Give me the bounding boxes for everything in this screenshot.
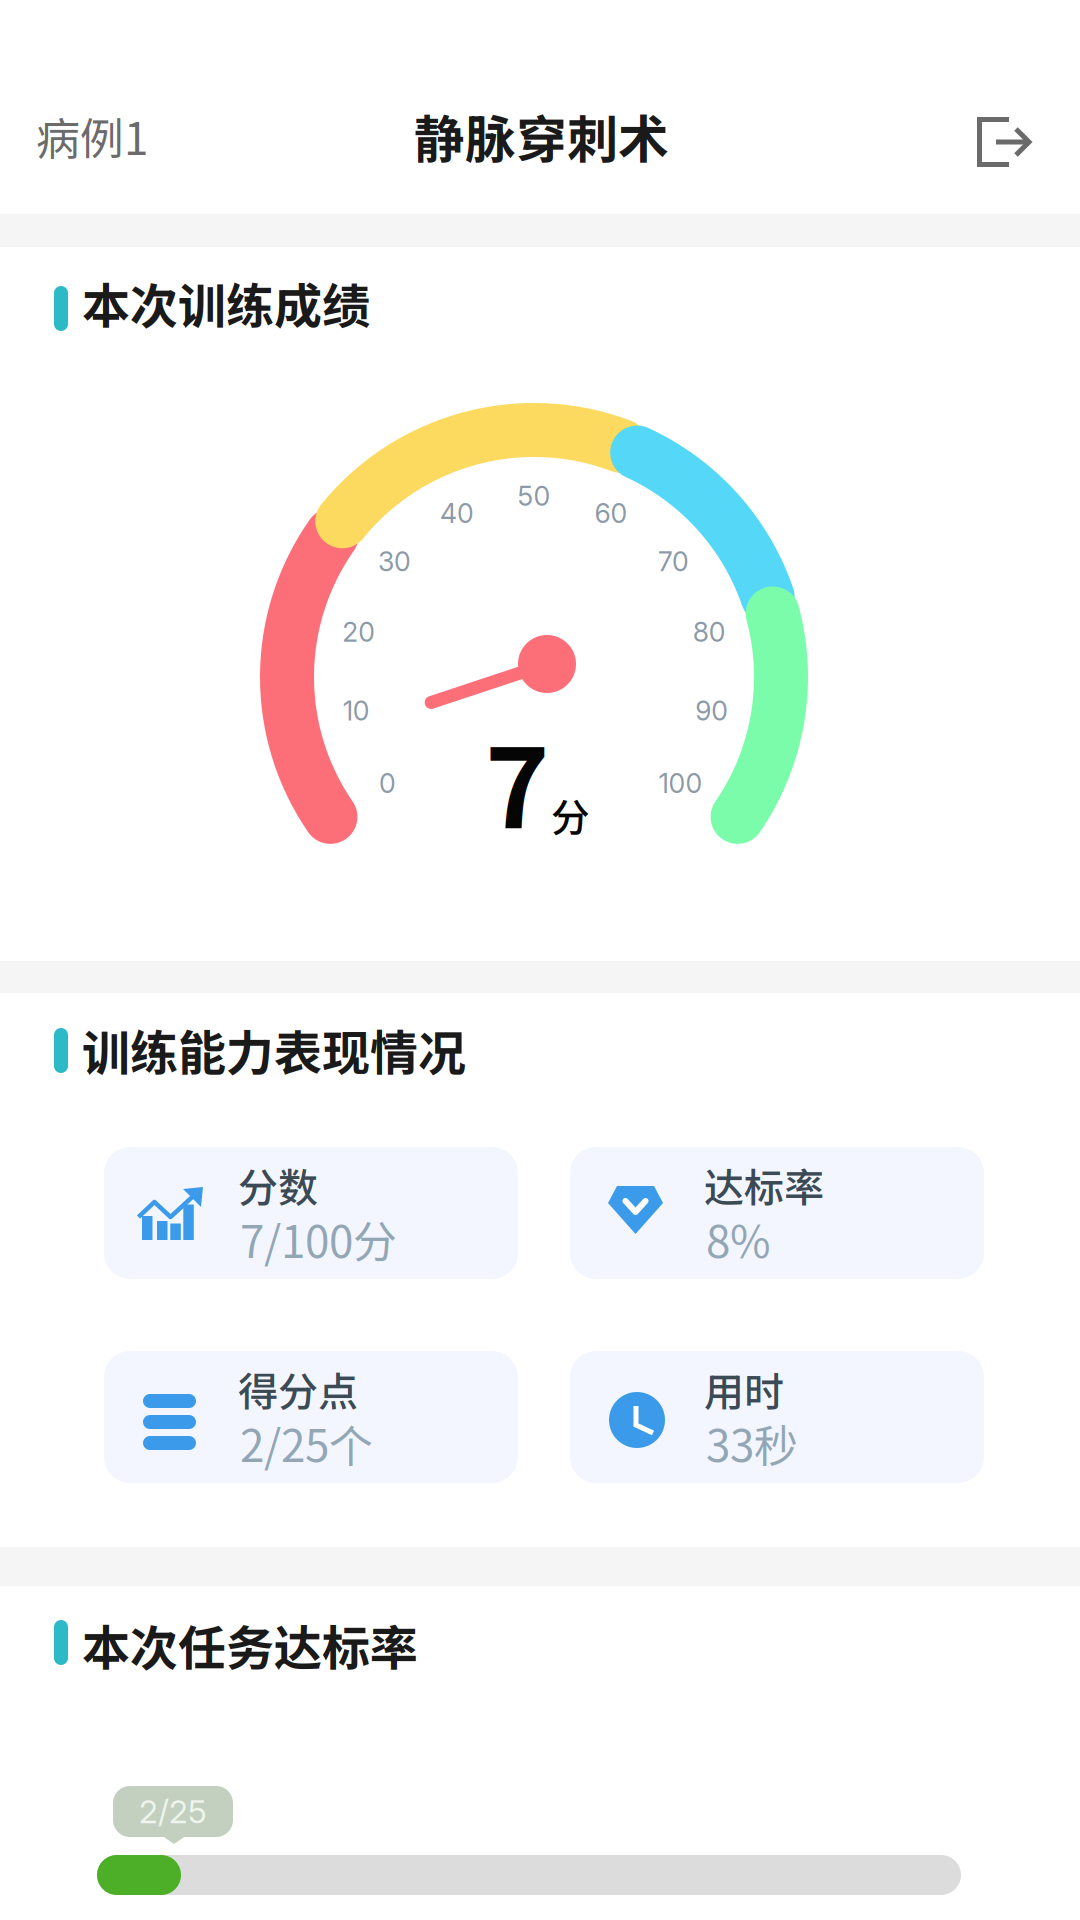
staticText: 用时 <box>704 1360 784 1418</box>
staticText: 得分点 <box>238 1360 358 1418</box>
staticText: 分数 <box>238 1156 318 1214</box>
staticText: 30 <box>378 545 411 578</box>
button[interactable]: 得分点 <box>104 1351 518 1483</box>
staticText: 训练能力表现情况 <box>82 1015 466 1084</box>
staticText: 33秒 <box>706 1411 798 1475</box>
staticText: 7/100分 <box>240 1207 397 1271</box>
staticText: 20 <box>342 616 375 648</box>
staticText: 本次训练成绩 <box>82 268 370 337</box>
staticText: 2/25 <box>139 1792 207 1831</box>
staticText: 分 <box>551 787 590 843</box>
staticText: 90 <box>695 695 728 727</box>
staticText: 100 <box>658 767 702 800</box>
staticText: 70 <box>658 545 689 578</box>
staticText: 7 <box>485 702 550 860</box>
staticText: 2/25个 <box>240 1411 373 1475</box>
staticText: 40 <box>440 497 474 529</box>
button[interactable]: 分数 <box>104 1147 518 1279</box>
staticText: 本次任务达标率 <box>82 1610 418 1679</box>
staticText: 达标率 <box>704 1156 824 1214</box>
staticText: 8% <box>706 1207 771 1271</box>
staticText: 60 <box>595 497 628 529</box>
staticText: 80 <box>693 616 726 648</box>
staticText: 0 <box>379 767 396 800</box>
staticText: 病例1 <box>36 104 148 168</box>
staticText: 50 <box>517 480 550 512</box>
staticText: 10 <box>343 695 370 727</box>
button[interactable]: 达标率 <box>570 1147 984 1279</box>
staticText: 静脉穿刺术 <box>414 99 669 172</box>
button[interactable]: 用时 <box>570 1351 984 1483</box>
